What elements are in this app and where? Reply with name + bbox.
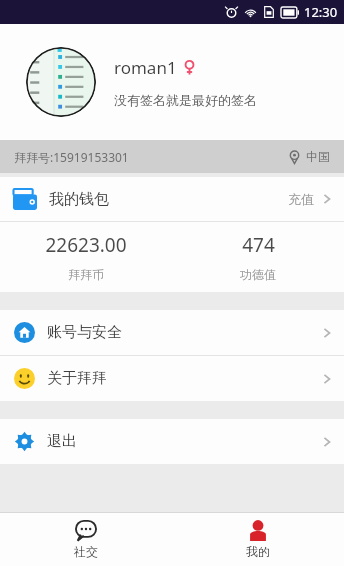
staticText: 中国 — [306, 149, 330, 164]
staticText: 关于拜拜 — [47, 369, 107, 388]
staticText: 充值 — [288, 191, 314, 207]
staticText: 我的 — [246, 544, 270, 559]
staticText: 474 — [242, 232, 275, 258]
staticText: roman1 — [114, 56, 177, 79]
staticText: 退出 — [47, 432, 77, 451]
staticText: 拜拜币 — [68, 267, 104, 282]
button[interactable]: 社交 — [0, 513, 172, 566]
button[interactable]: 我的钱包 — [0, 177, 344, 221]
other: Avatar — [26, 47, 96, 117]
staticText: 社交 — [74, 544, 98, 559]
button[interactable]: Avatar — [0, 24, 344, 140]
staticText: 功德值 — [240, 267, 276, 282]
staticText: 我的钱包 — [49, 190, 109, 209]
button[interactable]: 22623.00 — [0, 232, 172, 282]
staticText: 拜拜号:15919153301 — [14, 149, 129, 165]
staticText: 没有签名就是最好的签名 — [114, 92, 257, 108]
button[interactable]: 我的 — [172, 513, 344, 566]
button[interactable]: 关于拜拜 — [0, 356, 344, 401]
staticText: 账号与安全 — [47, 323, 122, 342]
button[interactable]: 账号与安全 — [0, 310, 344, 355]
staticText: 22623.00 — [45, 232, 127, 258]
staticText: 12:30 — [304, 3, 338, 21]
button[interactable]: 退出 — [0, 419, 344, 464]
button[interactable]: 474 — [172, 232, 344, 282]
